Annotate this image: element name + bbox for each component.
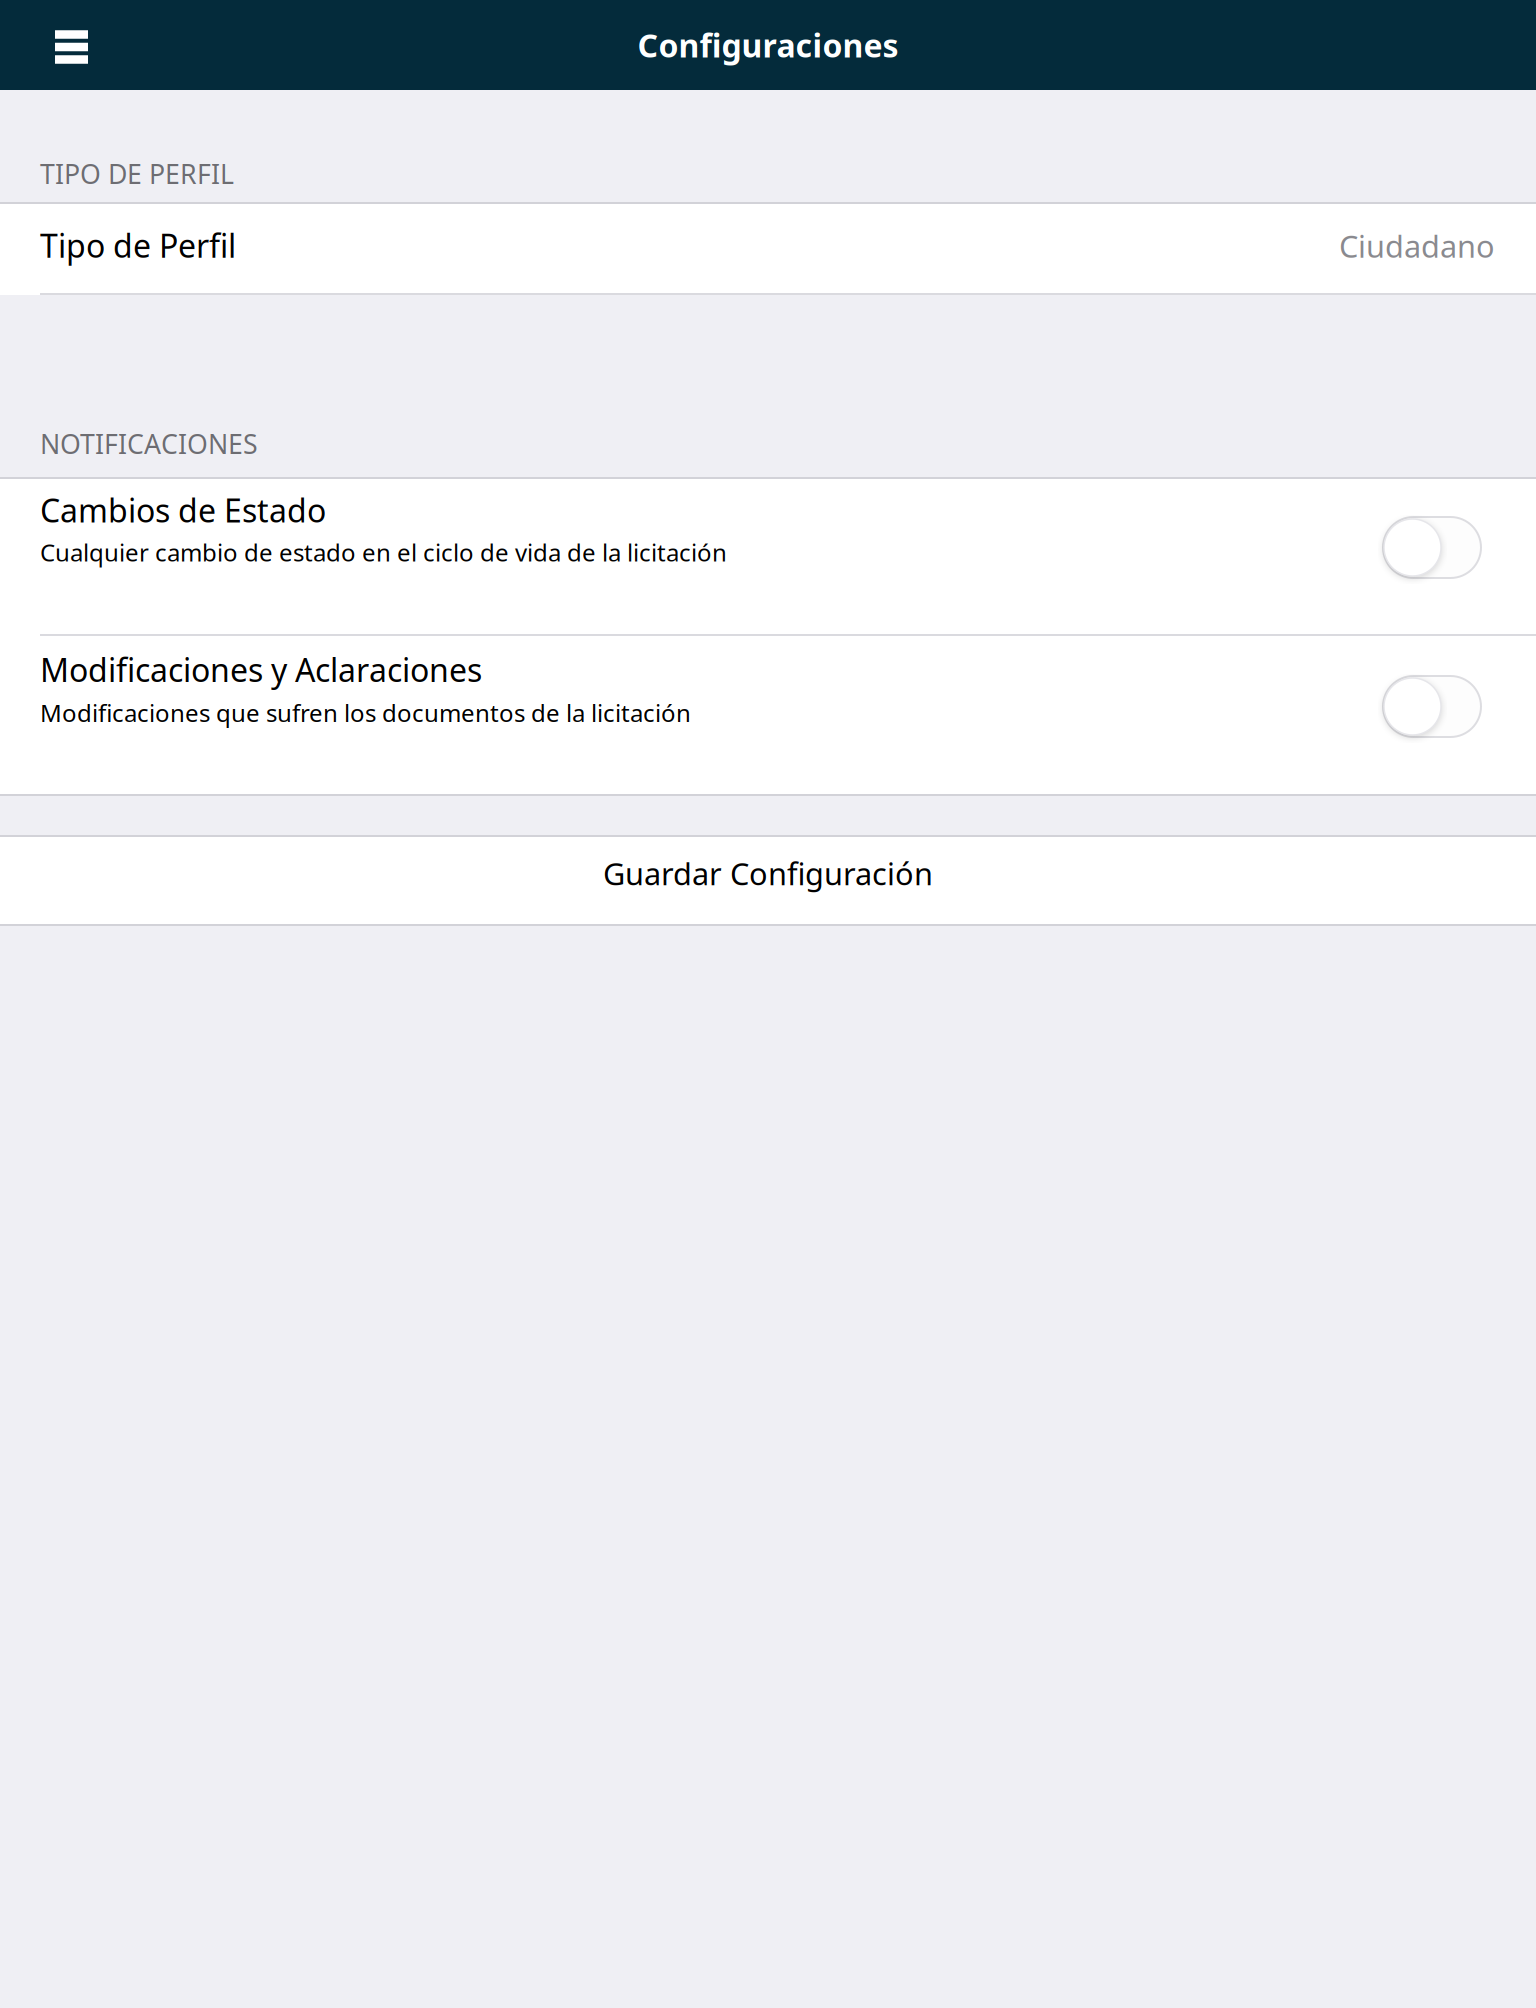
- staticText: Modificaciones que sufren los documentos…: [40, 697, 691, 729]
- staticText: Cambios de Estado: [40, 489, 326, 531]
- button[interactable]: Guardar Configuración: [0, 837, 1536, 924]
- button[interactable]: Tipo de Perfil: [0, 204, 1536, 293]
- staticText: NOTIFICACIONES: [40, 426, 258, 461]
- button[interactable]: Modificaciones y Aclaraciones: [0, 636, 1536, 794]
- button[interactable]: Menu: [27, 0, 116, 90]
- staticText: Configuraciones: [637, 24, 898, 66]
- staticText: TIPO DE PERFIL: [40, 156, 234, 191]
- staticText: Ciudadano: [1339, 225, 1495, 266]
- staticText: Tipo de Perfil: [40, 224, 236, 266]
- staticText: Modificaciones y Aclaraciones: [40, 648, 482, 691]
- staticText: Guardar Configuración: [603, 853, 933, 894]
- button[interactable]: Cambios de Estado: [0, 479, 1536, 634]
- staticText: Cualquier cambio de estado en el ciclo d…: [40, 536, 727, 568]
